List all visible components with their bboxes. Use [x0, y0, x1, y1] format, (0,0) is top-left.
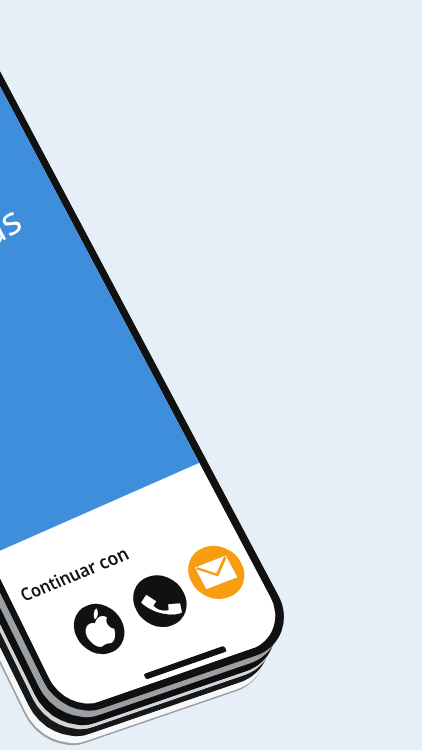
button[interactable]: Continue with phone [124, 568, 196, 634]
staticText: Continuar con [16, 540, 133, 606]
button[interactable]: Continue with email [178, 538, 254, 607]
staticText: tus reservas [0, 192, 29, 328]
button[interactable]: Continue with Apple [65, 597, 134, 661]
